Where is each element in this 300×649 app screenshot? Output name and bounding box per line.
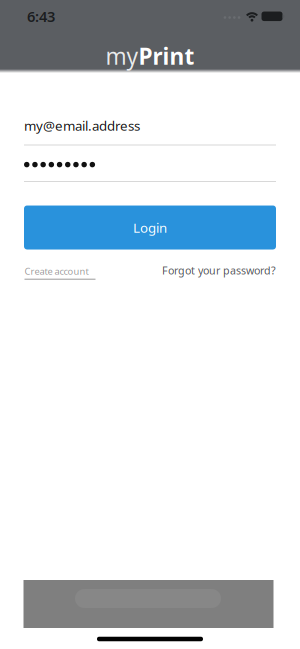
staticText: Forgot your password?: [162, 263, 276, 277]
button[interactable]: Forgot your password?: [0, 263, 300, 277]
staticText: Create account: [24, 265, 88, 277]
staticText: my@email.address: [24, 117, 140, 134]
staticText: 6:43: [27, 7, 55, 26]
staticText: my: [105, 41, 138, 71]
staticText: Login: [133, 219, 167, 236]
button[interactable]: Password: [24, 148, 276, 182]
button[interactable]: Email address: [24, 112, 276, 146]
staticText: Print: [138, 41, 194, 71]
button[interactable]: Login: [24, 205, 276, 249]
button[interactable]: Create account: [24, 265, 95, 280]
